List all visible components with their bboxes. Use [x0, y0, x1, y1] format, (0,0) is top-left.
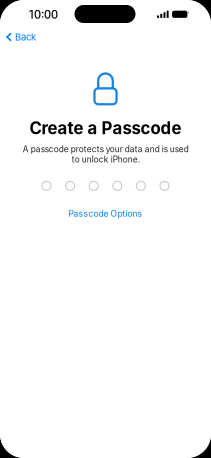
staticText: Passcode Options [68, 208, 142, 219]
button[interactable]: Back [0, 27, 44, 47]
staticText: Back [15, 31, 36, 43]
staticText: 10:00 [29, 8, 58, 21]
staticText: A passcode protects your data and is use… [22, 144, 188, 164]
button[interactable]: Passcode Options [58, 204, 152, 223]
staticText: Create a Passcode [29, 118, 181, 138]
